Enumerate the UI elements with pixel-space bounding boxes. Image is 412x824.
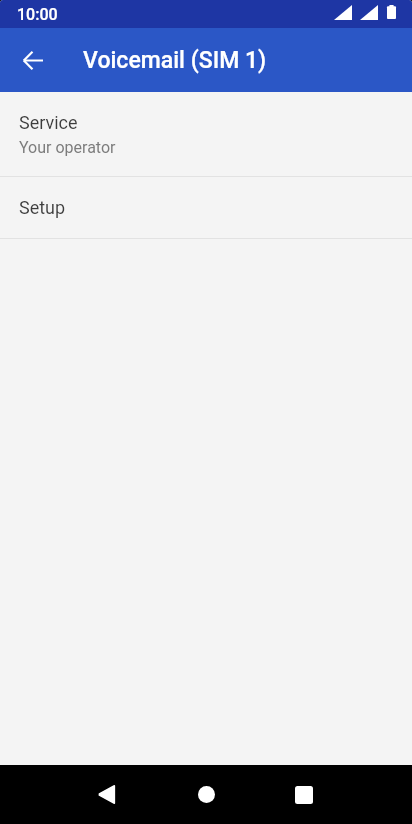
staticText: Setup [19,197,66,218]
button[interactable]: Back [76,765,136,824]
staticText: Service [19,112,78,133]
button[interactable]: Recent apps [274,765,334,824]
button[interactable]: Service [0,92,412,176]
button[interactable]: Home [176,765,236,824]
staticText: Voicemail (SIM 1) [83,47,267,74]
staticText: 10:00 [17,5,58,24]
button[interactable]: Navigate up [9,36,57,84]
button[interactable]: Setup [0,177,412,238]
staticText: Your operator [19,138,116,157]
